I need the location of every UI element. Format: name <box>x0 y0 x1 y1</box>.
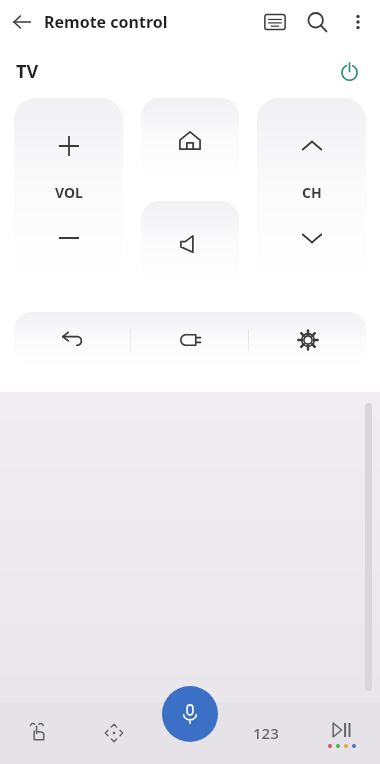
staticText: VOL <box>55 183 83 202</box>
button[interactable]: Mute <box>141 201 239 286</box>
button[interactable]: Touchpad <box>0 392 380 702</box>
button[interactable]: Search <box>296 1 338 43</box>
staticText: 123 <box>253 723 279 743</box>
button[interactable]: Back <box>14 312 130 368</box>
button[interactable]: Channel up <box>290 124 334 168</box>
button[interactable]: Volume up <box>47 124 91 168</box>
button[interactable]: D-pad mode <box>76 702 152 764</box>
staticText: TV <box>16 59 39 84</box>
staticText: CH <box>302 183 322 202</box>
button[interactable]: Playback controls <box>304 702 380 764</box>
button[interactable]: Volume up <box>14 98 123 286</box>
button[interactable]: More options <box>338 2 378 42</box>
button[interactable]: Touchpad mode <box>0 702 76 764</box>
staticText: Remote control <box>44 11 168 33</box>
button[interactable]: Channel down <box>290 216 334 260</box>
button[interactable]: Volume down <box>47 216 91 260</box>
button[interactable]: Voice search <box>162 686 218 742</box>
button[interactable]: Back <box>0 0 44 44</box>
button[interactable]: Keyboard <box>254 1 296 43</box>
button[interactable]: Input source <box>131 312 248 368</box>
button[interactable]: Channel up <box>257 98 366 286</box>
button[interactable]: Number pad <box>228 702 304 764</box>
button[interactable]: Home <box>141 98 239 183</box>
button[interactable]: Settings <box>249 312 366 368</box>
button[interactable]: Power <box>330 52 368 90</box>
